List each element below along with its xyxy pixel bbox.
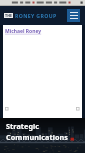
button[interactable]: THE (4, 12, 57, 19)
staticText: Strategic (6, 121, 40, 131)
button[interactable] (0, 0, 85, 6)
staticText: RONEY GROUP (15, 12, 57, 19)
button[interactable]: Strategic (0, 118, 85, 153)
staticText: Communications (6, 132, 69, 142)
button[interactable]: Open navigation menu (67, 9, 80, 22)
button[interactable]: Michael Roney (5, 28, 42, 35)
staticText: THE (5, 13, 13, 18)
